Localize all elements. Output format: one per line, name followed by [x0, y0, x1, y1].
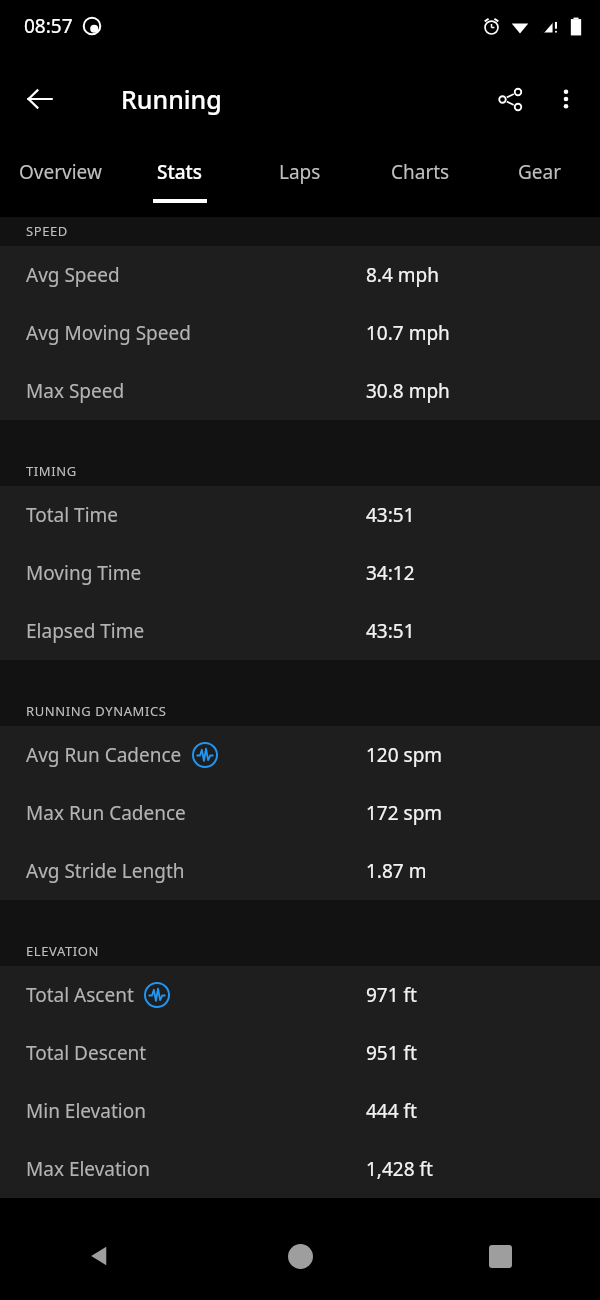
- staticText: Max Speed: [26, 378, 125, 404]
- staticText: 1.87 m: [366, 858, 427, 884]
- staticText: 43:51: [366, 618, 415, 644]
- staticText: Max Elevation: [26, 1156, 150, 1182]
- button[interactable]: Avg Moving Speed: [0, 304, 600, 362]
- staticText: 8.4 mph: [366, 262, 439, 288]
- staticText: Total Ascent: [26, 982, 134, 1008]
- staticText: Max Run Cadence: [26, 800, 186, 826]
- staticText: 120 spm: [366, 742, 443, 768]
- staticText: 172 spm: [366, 800, 443, 826]
- button[interactable]: Avg Stride Length: [0, 842, 600, 900]
- button[interactable]: Max Run Cadence: [0, 784, 600, 842]
- button[interactable]: Charts: [360, 145, 480, 217]
- staticText: Charts: [391, 159, 450, 185]
- staticText: 444 ft: [366, 1098, 417, 1124]
- button[interactable]: More options: [538, 71, 594, 127]
- button[interactable]: Avg Speed: [0, 246, 600, 304]
- staticText: 951 ft: [366, 1040, 417, 1066]
- button[interactable]: Laps: [240, 145, 360, 217]
- staticText: Stats: [157, 159, 203, 185]
- staticText: RUNNING DYNAMICS: [26, 702, 167, 720]
- button[interactable]: Share: [482, 71, 538, 127]
- button[interactable]: Stats: [120, 145, 240, 217]
- staticText: Total Descent: [26, 1040, 147, 1066]
- button[interactable]: Min Elevation: [0, 1082, 600, 1140]
- staticText: 34:12: [366, 560, 415, 586]
- button[interactable]: Overview: [0, 145, 120, 217]
- button[interactable]: Total Time: [0, 486, 600, 544]
- staticText: Avg Moving Speed: [26, 320, 191, 346]
- staticText: 08:57: [24, 13, 73, 39]
- staticText: Running: [121, 82, 222, 116]
- staticText: Elapsed Time: [26, 618, 145, 644]
- button[interactable]: Max Speed: [0, 362, 600, 420]
- staticText: Total Time: [26, 502, 119, 528]
- button[interactable]: Back: [0, 1212, 200, 1300]
- button[interactable]: Avg Run Cadence: [0, 726, 600, 784]
- button[interactable]: Max Elevation: [0, 1140, 600, 1198]
- button[interactable]: Back: [12, 71, 68, 127]
- staticText: Avg Stride Length: [26, 858, 185, 884]
- button[interactable]: Elapsed Time: [0, 602, 600, 660]
- button[interactable]: Total Descent: [0, 1024, 600, 1082]
- staticText: Avg Speed: [26, 262, 120, 288]
- button[interactable]: Home: [200, 1212, 400, 1300]
- staticText: ELEVATION: [26, 942, 100, 960]
- staticText: Avg Run Cadence: [26, 742, 182, 768]
- button[interactable]: Recent apps: [400, 1212, 600, 1300]
- staticText: Laps: [279, 159, 321, 185]
- staticText: SPEED: [26, 222, 68, 240]
- button[interactable]: Moving Time: [0, 544, 600, 602]
- staticText: Gear: [518, 159, 562, 185]
- staticText: Overview: [19, 159, 102, 185]
- staticText: Min Elevation: [26, 1098, 146, 1124]
- staticText: 10.7 mph: [366, 320, 450, 346]
- button[interactable]: Gear: [480, 145, 600, 217]
- staticText: 30.8 mph: [366, 378, 450, 404]
- staticText: TIMING: [26, 462, 77, 480]
- button[interactable]: Total Ascent: [0, 966, 600, 1024]
- staticText: Moving Time: [26, 560, 142, 586]
- staticText: 971 ft: [366, 982, 417, 1008]
- staticText: 43:51: [366, 502, 415, 528]
- staticText: 1,428 ft: [366, 1156, 433, 1182]
